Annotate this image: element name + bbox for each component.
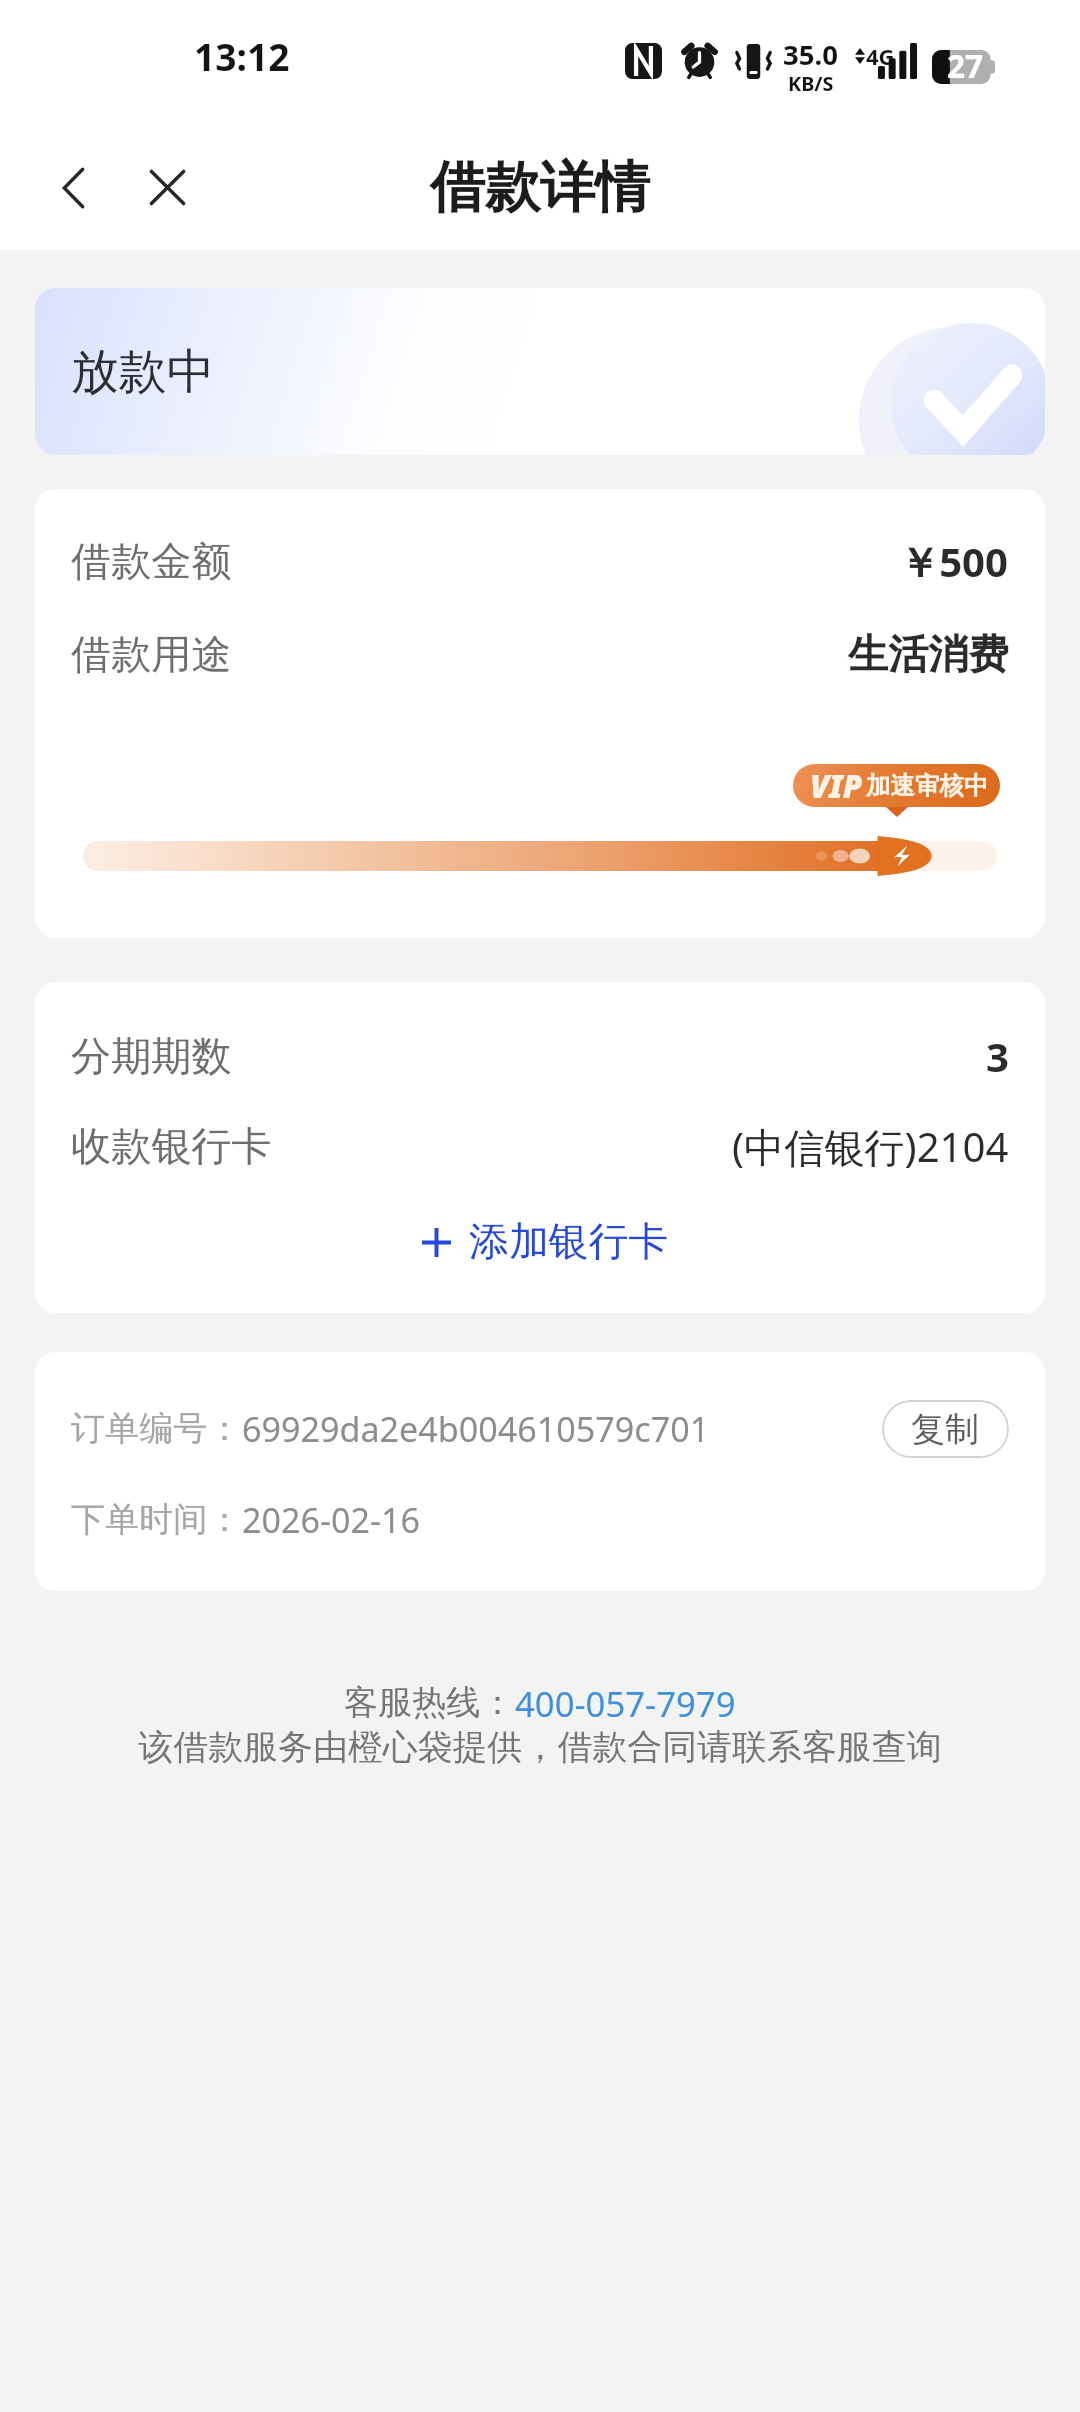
staticText: 35.0: [783, 36, 838, 73]
staticText: 4G: [866, 41, 895, 71]
staticText: 分期期数: [71, 1031, 232, 1082]
staticText: (中信银行)2104: [732, 1119, 1009, 1174]
staticText: 借款用途: [71, 629, 232, 680]
staticText: 添加银行卡: [469, 1217, 669, 1267]
staticText: VIP: [810, 764, 863, 807]
staticText: 生活消费: [848, 629, 1009, 680]
staticText: 借款金额: [71, 536, 232, 587]
staticText: 收款银行卡: [71, 1121, 272, 1172]
staticText: 放款中: [71, 342, 215, 402]
button[interactable]: 400-057-7979: [515, 1680, 736, 1724]
staticText: ￥500: [899, 534, 1009, 589]
staticText: 该借款服务由橙心袋提供，借款合同请联系客服查询: [138, 1725, 942, 1769]
staticText: 69929da2e4b004610579c701: [242, 1406, 710, 1452]
staticText: 借款详情: [430, 153, 650, 222]
staticText: 13:12: [194, 31, 290, 82]
staticText: 订单编号：: [71, 1407, 242, 1450]
button[interactable]: Close: [140, 160, 195, 215]
staticText: 27: [947, 44, 984, 87]
staticText: 2026-02-16: [242, 1497, 420, 1543]
staticText: 加速审核中: [866, 770, 989, 801]
staticText: KB/S: [788, 70, 834, 97]
staticText: 3: [986, 1029, 1009, 1084]
staticText: 客服热线：: [344, 1681, 515, 1724]
staticText: 复制: [911, 1408, 980, 1451]
button[interactable]: Back: [47, 162, 99, 214]
staticText: 下单时间：: [71, 1498, 242, 1541]
button[interactable]: 复制: [882, 1400, 1009, 1458]
button[interactable]: 添加银行卡: [71, 1191, 1009, 1285]
